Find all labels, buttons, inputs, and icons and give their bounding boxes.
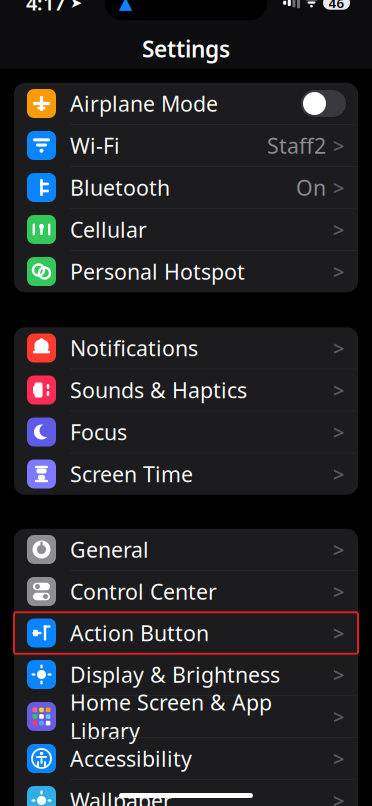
staticText: ▲	[119, 0, 132, 13]
staticText: Focus	[70, 418, 127, 446]
staticText: >	[333, 132, 344, 159]
staticText: >	[333, 419, 344, 445]
staticText: >	[333, 661, 344, 688]
staticText: >	[333, 745, 344, 772]
staticText: Bluetooth	[70, 173, 170, 202]
staticText: Wi-Fi	[70, 131, 120, 160]
staticText: >	[333, 216, 344, 243]
staticText: Staff2	[267, 131, 326, 160]
button[interactable]: Sounds & Haptics	[14, 369, 358, 411]
staticText: >	[333, 461, 344, 487]
staticText: Screen Time	[70, 460, 193, 488]
button[interactable]: Home Screen & App Library	[14, 696, 358, 738]
staticText: Airplane Mode	[70, 89, 218, 118]
button[interactable]: Display & Brightness	[14, 654, 358, 696]
staticText: 4:17	[26, 0, 65, 16]
staticText: >	[333, 335, 344, 361]
button[interactable]: Screen Time	[14, 453, 358, 495]
button[interactable]: Control Center	[14, 571, 358, 612]
button[interactable]: Bluetooth	[14, 167, 358, 209]
button[interactable]: Cellular	[14, 209, 358, 251]
button[interactable]: Accessibility	[14, 738, 358, 780]
staticText: >	[333, 377, 344, 403]
button[interactable]: Notifications	[14, 327, 358, 369]
staticText: >	[333, 578, 344, 605]
button[interactable]: Wallpaper	[14, 780, 358, 806]
staticText: Display & Brightness	[70, 660, 280, 689]
staticText: Cellular	[70, 215, 147, 244]
staticText: Wallpaper	[70, 786, 172, 806]
staticText: Personal Hotspot	[70, 257, 245, 286]
staticText: Notifications	[70, 334, 198, 362]
staticText: Accessibility	[70, 744, 192, 773]
staticText: General	[70, 535, 149, 564]
button[interactable]: Wi-Fi	[14, 125, 358, 167]
staticText: >	[333, 536, 344, 563]
staticText: >	[333, 258, 344, 285]
staticText: >	[333, 703, 344, 730]
staticText: Settings	[142, 34, 230, 64]
staticText: Action Button	[70, 619, 209, 647]
button[interactable]: Personal Hotspot	[14, 251, 358, 292]
staticText: 46	[328, 0, 344, 12]
staticText: >	[333, 174, 344, 201]
staticText: Control Center	[70, 577, 217, 606]
staticText: Sounds & Haptics	[70, 376, 247, 404]
button[interactable]: Focus	[14, 411, 358, 453]
staticText: >	[333, 787, 344, 806]
staticText: Home Screen & App Library	[70, 688, 272, 745]
button[interactable]: Action Button	[14, 612, 358, 654]
staticText: On	[296, 173, 326, 202]
staticText: ➤	[70, 0, 82, 11]
staticText: >	[333, 620, 344, 646]
button[interactable]: General	[14, 529, 358, 571]
button[interactable]: Airplane Mode	[14, 83, 358, 125]
